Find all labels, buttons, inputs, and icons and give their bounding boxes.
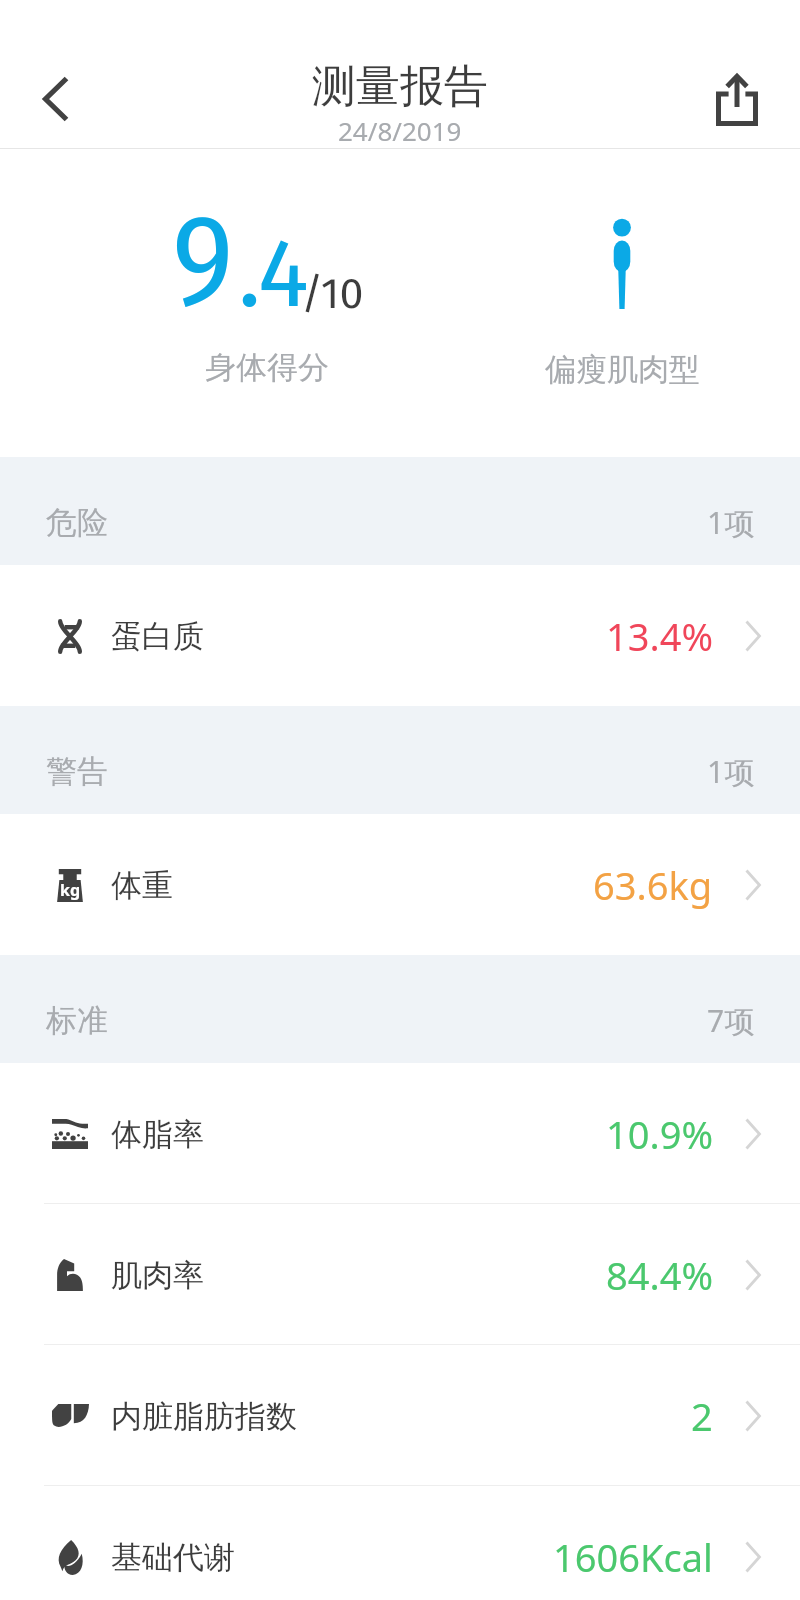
button[interactable]: Back	[24, 67, 88, 131]
button[interactable]: 肌肉率	[0, 1204, 800, 1345]
staticText: 1项	[707, 751, 755, 792]
staticText: 体重	[111, 866, 173, 905]
button[interactable]: 基础代谢	[0, 1486, 800, 1600]
staticText: 警告	[46, 752, 108, 791]
staticText: 7项	[707, 1000, 755, 1041]
staticText: 测量报告	[312, 59, 488, 114]
button[interactable]: 体脂率	[0, 1063, 800, 1204]
staticText: 危险	[46, 503, 108, 542]
staticText: 基础代谢	[111, 1538, 235, 1577]
button[interactable]: kg	[0, 814, 800, 955]
staticText: 标准	[46, 1001, 108, 1040]
staticText: .4	[238, 216, 309, 331]
staticText: 身体得分	[205, 348, 329, 387]
button[interactable]: 内脏脂肪指数	[0, 1345, 800, 1486]
staticText: kg	[60, 879, 81, 901]
staticText: 24/8/2019	[338, 113, 462, 148]
staticText: 84.4%	[606, 1249, 713, 1301]
staticText: 10.9%	[606, 1108, 713, 1160]
staticText: 内脏脂肪指数	[111, 1397, 297, 1436]
staticText: 9	[172, 185, 234, 337]
staticText: 蛋白质	[111, 617, 204, 656]
staticText: 偏瘦肌肉型	[545, 350, 700, 389]
staticText: 1606Kcal	[553, 1531, 713, 1583]
button[interactable]: Share	[705, 69, 769, 133]
staticText: 肌肉率	[111, 1256, 204, 1295]
staticText: 63.6kg	[593, 859, 713, 911]
button[interactable]: 蛋白质	[0, 565, 800, 706]
staticText: /10	[301, 268, 364, 320]
staticText: 13.4%	[606, 610, 713, 662]
staticText: 2	[691, 1390, 713, 1442]
staticText: 1项	[707, 502, 755, 543]
staticText: 体脂率	[111, 1115, 204, 1154]
